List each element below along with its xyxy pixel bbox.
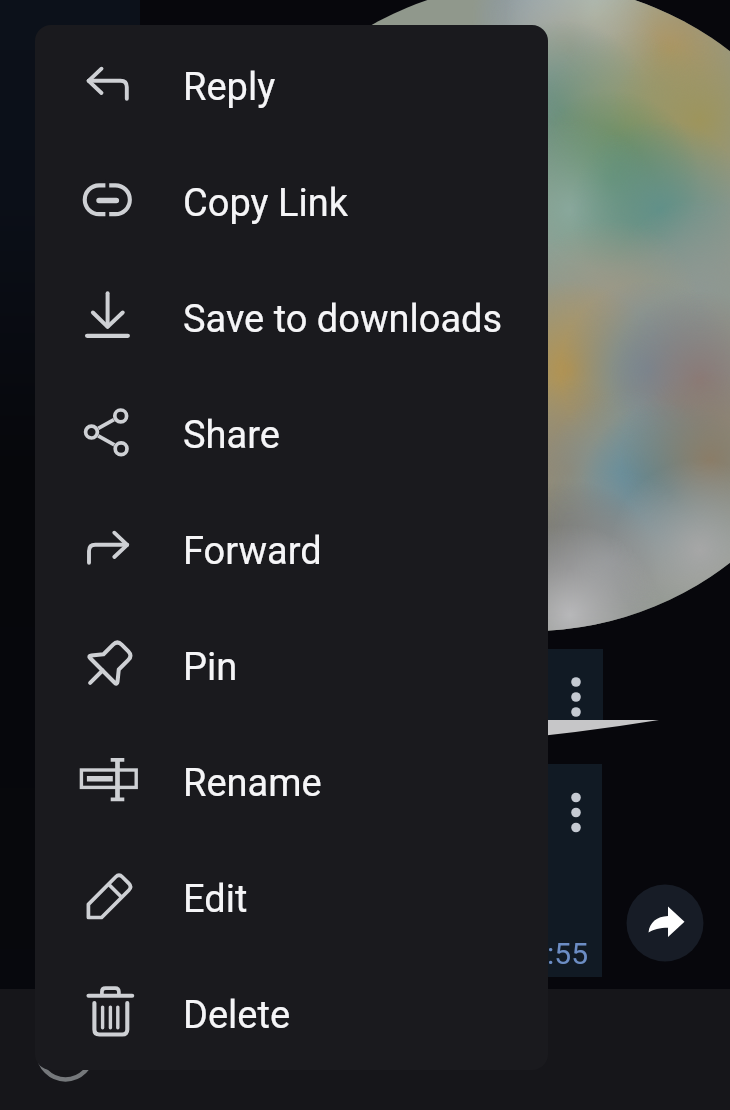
button[interactable]: Forward bbox=[35, 489, 548, 605]
button[interactable]: Reply bbox=[35, 25, 548, 141]
staticText: Delete bbox=[183, 993, 291, 1038]
staticText: Copy Link bbox=[183, 181, 348, 226]
staticText: :55 bbox=[547, 936, 588, 971]
staticText: Forward bbox=[183, 529, 322, 574]
button[interactable]: Edit bbox=[35, 837, 548, 953]
staticText: Edit bbox=[183, 877, 248, 922]
button[interactable]: Rename bbox=[35, 721, 548, 837]
staticText: Rename bbox=[183, 761, 322, 806]
button[interactable]: Share bbox=[35, 373, 548, 489]
button[interactable]: Save to downloads bbox=[35, 257, 548, 373]
staticText: Save to downloads bbox=[183, 297, 503, 342]
staticText: Share bbox=[183, 413, 280, 458]
button[interactable]: Delete bbox=[35, 953, 548, 1069]
staticText: Pin bbox=[183, 645, 238, 690]
button[interactable]: Pin bbox=[35, 605, 548, 721]
button[interactable]: Copy Link bbox=[35, 141, 548, 257]
staticText: Reply bbox=[183, 65, 276, 110]
